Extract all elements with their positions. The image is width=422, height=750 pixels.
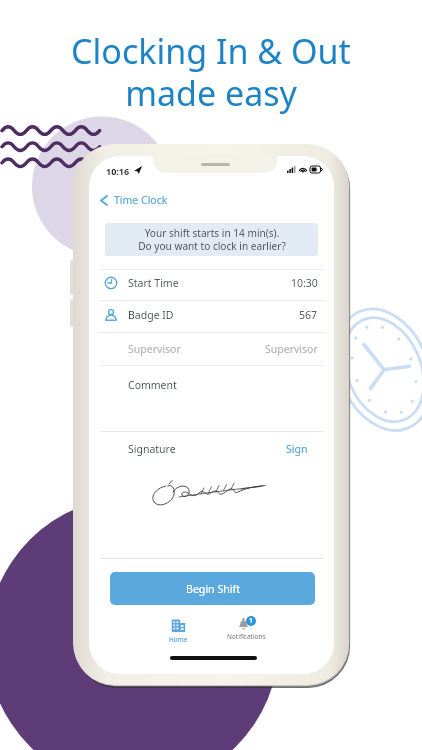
staticText: Notifications	[227, 632, 266, 641]
staticText: Clocking In & Out	[71, 28, 351, 74]
staticText: Sign	[286, 442, 308, 456]
staticText: Badge ID	[128, 308, 174, 322]
staticText: Comment	[128, 378, 177, 392]
button[interactable]: 1	[218, 616, 274, 641]
button[interactable]: Badge ID	[104, 302, 318, 328]
staticText: Supervisor	[128, 342, 181, 356]
button[interactable]: Sign	[286, 442, 308, 456]
button[interactable]: Start Time	[104, 270, 318, 296]
staticText: Time Clock	[114, 193, 168, 207]
staticText: made easy	[125, 70, 297, 116]
button[interactable]: Time Clock	[100, 188, 168, 212]
staticText: Your shift starts in 14 min(s). Do you w…	[138, 226, 286, 253]
button[interactable]: Comment	[100, 370, 324, 428]
staticText: 10:30	[291, 276, 318, 290]
staticText: Begin Shift	[186, 582, 240, 596]
staticText: Start Time	[128, 276, 179, 290]
staticText: Supervisor	[265, 342, 318, 356]
staticText: 567	[299, 308, 318, 322]
staticText: Home	[169, 635, 188, 644]
button[interactable]: Begin Shift	[110, 572, 315, 605]
staticText: 10:16	[106, 165, 130, 177]
staticText: 1	[249, 616, 254, 626]
button[interactable]: Supervisor	[104, 336, 318, 362]
button[interactable]: Home	[153, 618, 203, 644]
staticText: Signature	[128, 442, 176, 456]
